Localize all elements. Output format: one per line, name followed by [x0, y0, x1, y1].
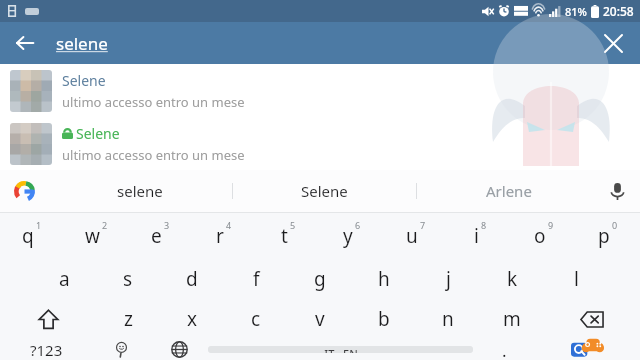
button[interactable]: Selene — [0, 117, 640, 170]
button[interactable]: n — [416, 299, 480, 339]
staticText: u — [406, 223, 418, 249]
staticText: w — [85, 223, 100, 249]
button[interactable]: Google — [10, 177, 38, 205]
button[interactable]: q — [0, 213, 64, 259]
staticText: s — [123, 266, 133, 292]
button[interactable]: Search — [536, 339, 640, 360]
button[interactable]: c — [224, 299, 288, 339]
button[interactable]: j — [416, 259, 480, 299]
button[interactable]: a — [32, 259, 96, 299]
button[interactable]: r — [192, 213, 256, 259]
staticText: Selene — [76, 124, 120, 143]
button[interactable]: d — [160, 259, 224, 299]
button[interactable]: v — [288, 299, 352, 339]
button[interactable]: x — [160, 299, 224, 339]
button[interactable]: Selene — [233, 170, 416, 212]
staticText: 2 — [102, 219, 108, 231]
staticText: 20:58 — [603, 3, 634, 19]
button[interactable]: Clear search — [596, 26, 630, 60]
staticText: ultimo accesso entro un mese — [62, 93, 245, 111]
button[interactable]: f — [224, 259, 288, 299]
staticText: g — [314, 266, 326, 292]
staticText: selene — [56, 32, 108, 55]
staticText: m — [503, 306, 521, 332]
button[interactable]: b — [352, 299, 416, 339]
staticText: v — [315, 306, 325, 332]
button[interactable]: p — [576, 213, 640, 259]
button[interactable]: u — [384, 213, 448, 259]
button[interactable]: g — [288, 259, 352, 299]
staticText: c — [251, 306, 261, 332]
staticText: 7 — [420, 219, 426, 231]
button[interactable]: e — [128, 213, 192, 259]
staticText: 3 — [164, 219, 170, 231]
button[interactable]: Selene — [0, 64, 640, 117]
staticText: 81% — [565, 4, 587, 19]
staticText: b — [378, 306, 390, 332]
staticText: Arlene — [486, 181, 532, 201]
button[interactable]: i — [448, 213, 512, 259]
staticText: 9 — [548, 219, 554, 231]
button[interactable]: Arlene — [417, 170, 600, 212]
staticText: n — [442, 306, 454, 332]
staticText: y — [343, 223, 353, 249]
staticText: 6 — [355, 219, 361, 231]
staticText: j — [446, 266, 451, 292]
staticText: f — [253, 266, 260, 292]
button[interactable]: . — [473, 339, 536, 360]
staticText: a — [59, 266, 70, 292]
staticText: 5 — [290, 219, 296, 231]
staticText: x — [187, 306, 198, 332]
button[interactable]: selene — [48, 170, 232, 212]
staticText: 0 — [612, 219, 618, 231]
button[interactable]: o — [512, 213, 576, 259]
button[interactable]: ?123 — [0, 339, 92, 360]
button[interactable]: Emoji — [92, 339, 150, 360]
button[interactable]: l — [544, 259, 608, 299]
staticText: k — [507, 266, 518, 292]
staticText: p — [598, 223, 610, 249]
button[interactable]: Backspace — [544, 299, 640, 339]
staticText: h — [378, 266, 390, 292]
staticText: . — [502, 339, 507, 360]
button[interactable]: Change language — [150, 339, 208, 360]
staticText: Selene — [62, 71, 106, 90]
staticText: ?123 — [30, 340, 63, 360]
staticText: ultimo accesso entro un mese — [62, 146, 245, 164]
button[interactable]: Shift — [0, 299, 96, 339]
staticText: selene — [117, 181, 163, 201]
staticText: 4 — [226, 219, 232, 231]
staticText: l — [574, 266, 579, 292]
staticText: d — [186, 266, 198, 292]
staticText: 1 — [36, 219, 42, 231]
button[interactable]: t — [256, 213, 320, 259]
button[interactable]: Back — [8, 26, 42, 60]
button[interactable]: k — [480, 259, 544, 299]
staticText: i — [474, 223, 479, 249]
button[interactable]: w — [64, 213, 128, 259]
button[interactable]: IT · EN — [208, 346, 473, 353]
button[interactable]: Voice input — [602, 176, 632, 206]
button[interactable]: z — [96, 299, 160, 339]
button[interactable]: h — [352, 259, 416, 299]
staticText: q — [22, 223, 34, 249]
staticText: 8 — [481, 219, 487, 231]
button[interactable]: y — [320, 213, 384, 259]
staticText: IT · EN — [324, 346, 358, 353]
staticText: z — [124, 306, 133, 332]
staticText: Selene — [301, 181, 348, 201]
staticText: e — [151, 223, 162, 249]
button[interactable]: m — [480, 299, 544, 339]
staticText: o — [534, 223, 546, 249]
staticText: t — [281, 223, 288, 249]
staticText: r — [216, 223, 224, 249]
button[interactable]: s — [96, 259, 160, 299]
